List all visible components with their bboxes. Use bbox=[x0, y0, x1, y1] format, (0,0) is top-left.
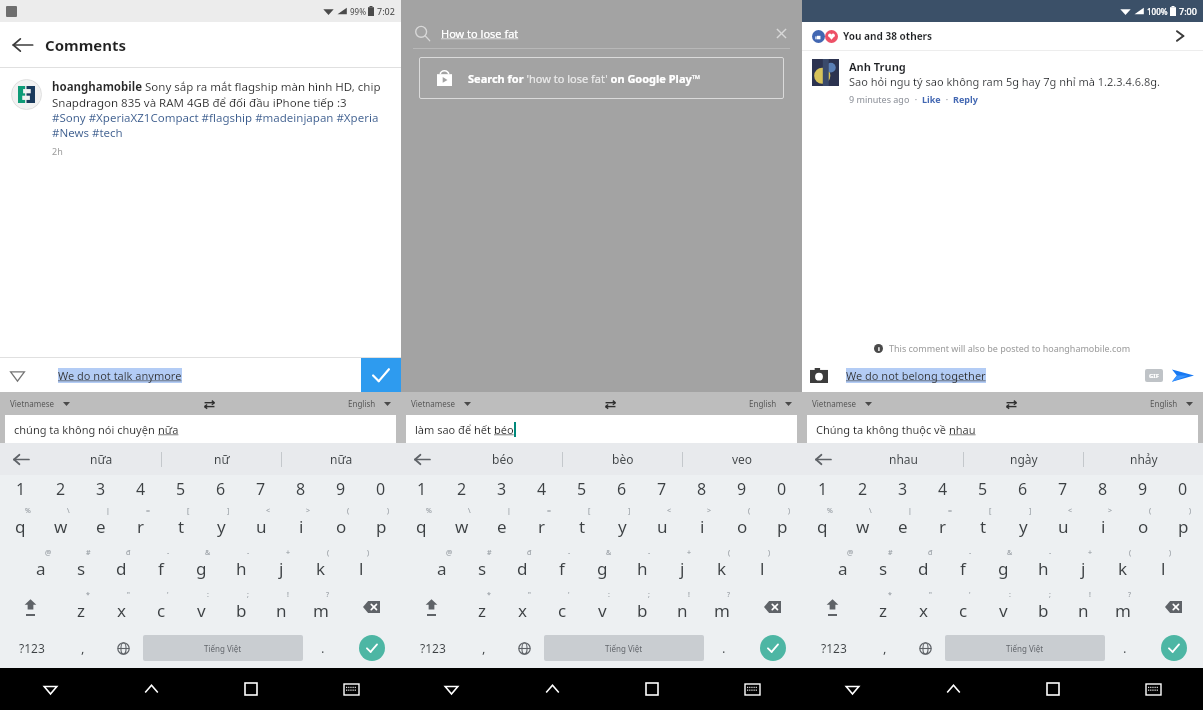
button[interactable]: ( bbox=[702, 544, 742, 586]
button[interactable]: > bbox=[281, 502, 321, 544]
button[interactable]: ; bbox=[622, 586, 662, 628]
button[interactable]: - bbox=[141, 544, 181, 586]
button[interactable]: 4 bbox=[923, 475, 963, 502]
button[interactable]: Vietnamese bbox=[812, 398, 872, 409]
button[interactable]: ; bbox=[221, 586, 261, 628]
button[interactable]: Swap languages bbox=[198, 393, 220, 415]
button[interactable]: Recents bbox=[201, 668, 301, 710]
button[interactable]: Search bbox=[411, 22, 433, 44]
button[interactable]: 3 bbox=[81, 475, 121, 502]
button[interactable]: ) bbox=[1163, 502, 1203, 544]
button[interactable]: ?123 bbox=[802, 628, 865, 668]
button[interactable]: 1 bbox=[401, 475, 442, 502]
button[interactable]: & bbox=[582, 544, 622, 586]
button[interactable]: \ bbox=[41, 502, 81, 544]
button[interactable]: @ bbox=[21, 544, 61, 586]
button[interactable]: Send bbox=[1163, 359, 1203, 392]
button[interactable]: Change language bbox=[103, 628, 143, 668]
button[interactable]: Tiếng Việt bbox=[945, 635, 1105, 661]
button[interactable]: Delete bbox=[1143, 586, 1203, 628]
button[interactable]: - bbox=[542, 544, 582, 586]
button[interactable]: 6 bbox=[1003, 475, 1043, 502]
button[interactable]: Vietnamese bbox=[10, 398, 70, 409]
button[interactable]: & bbox=[181, 544, 221, 586]
button[interactable]: & bbox=[983, 544, 1023, 586]
button[interactable]: @ bbox=[422, 544, 462, 586]
button[interactable]: 6 bbox=[201, 475, 241, 502]
button[interactable]: 4 bbox=[121, 475, 161, 502]
button[interactable]: \ bbox=[843, 502, 883, 544]
button[interactable]: 4 bbox=[522, 475, 562, 502]
button[interactable]: Home bbox=[903, 668, 1003, 710]
button[interactable]: 5 bbox=[161, 475, 201, 502]
button[interactable]: ! bbox=[261, 586, 301, 628]
button[interactable]: ' bbox=[943, 586, 983, 628]
button[interactable]: Send direct bbox=[0, 358, 34, 392]
button[interactable]: nữ bbox=[162, 443, 281, 475]
button[interactable]: veo bbox=[683, 443, 802, 475]
button[interactable]: béo bbox=[443, 443, 562, 475]
button[interactable]: Back bbox=[0, 668, 101, 710]
button[interactable]: : bbox=[181, 586, 221, 628]
button[interactable]: Chúng ta không thuộc về bbox=[816, 415, 1189, 443]
button[interactable]: nhau bbox=[844, 443, 963, 475]
button[interactable]: ( bbox=[1103, 544, 1143, 586]
button[interactable]: đ bbox=[502, 544, 542, 586]
button[interactable]: Search for 'how to lose fat' on Google P… bbox=[419, 57, 784, 99]
button[interactable]: , bbox=[865, 628, 905, 668]
button[interactable]: chúng ta không nói chuyện bbox=[14, 415, 387, 443]
button[interactable]: ( bbox=[1123, 502, 1163, 544]
button[interactable]: 2 bbox=[442, 475, 482, 502]
button[interactable]: ! bbox=[662, 586, 702, 628]
button[interactable]: English bbox=[749, 398, 792, 409]
button[interactable]: ? bbox=[702, 586, 742, 628]
button[interactable]: Clear bbox=[770, 22, 792, 44]
button[interactable]: % bbox=[0, 502, 41, 544]
button[interactable]: : bbox=[983, 586, 1023, 628]
button[interactable]: Back bbox=[0, 22, 45, 67]
button[interactable]: Enter bbox=[1145, 628, 1203, 668]
button[interactable]: 7 bbox=[241, 475, 281, 502]
button[interactable]: Delete bbox=[341, 586, 401, 628]
button[interactable]: 9 bbox=[1123, 475, 1163, 502]
button[interactable]: 3 bbox=[482, 475, 522, 502]
button[interactable]: * bbox=[462, 586, 502, 628]
button[interactable]: Previous suggestions bbox=[401, 443, 443, 475]
button[interactable]: ngày bbox=[964, 443, 1083, 475]
button[interactable]: Confirm bbox=[361, 358, 401, 392]
button[interactable]: 8 bbox=[682, 475, 722, 502]
button[interactable]: > bbox=[682, 502, 722, 544]
button[interactable]: ( bbox=[722, 502, 762, 544]
button[interactable]: Previous suggestions bbox=[802, 443, 844, 475]
button[interactable]: Back bbox=[401, 668, 502, 710]
button[interactable]: ? bbox=[301, 586, 341, 628]
button[interactable]: Home bbox=[101, 668, 201, 710]
button[interactable]: 5 bbox=[562, 475, 602, 502]
button[interactable]: Enter bbox=[744, 628, 802, 668]
button[interactable]: See all reactions bbox=[1167, 23, 1193, 49]
button[interactable]: 2 bbox=[843, 475, 883, 502]
button[interactable]: ] bbox=[201, 502, 241, 544]
button[interactable]: 8 bbox=[1083, 475, 1123, 502]
button[interactable]: + bbox=[261, 544, 301, 586]
button[interactable]: Home bbox=[502, 668, 602, 710]
button[interactable]: - bbox=[622, 544, 662, 586]
button[interactable]: 1 bbox=[802, 475, 843, 502]
button[interactable]: * bbox=[61, 586, 101, 628]
button[interactable]: Previous suggestions bbox=[0, 443, 42, 475]
button[interactable]: Hide keyboard bbox=[1103, 668, 1203, 710]
button[interactable]: ? bbox=[1103, 586, 1143, 628]
button[interactable]: Back bbox=[802, 668, 903, 710]
button[interactable]: , bbox=[464, 628, 504, 668]
button[interactable]: 2 bbox=[41, 475, 81, 502]
button[interactable]: bèo bbox=[563, 443, 682, 475]
button[interactable]: Enter bbox=[343, 628, 401, 668]
button[interactable]: Shift bbox=[401, 586, 462, 628]
button[interactable]: ! bbox=[1063, 586, 1103, 628]
button[interactable]: = bbox=[121, 502, 161, 544]
button[interactable]: \ bbox=[442, 502, 482, 544]
button[interactable]: Like bbox=[922, 93, 941, 105]
button[interactable]: ] bbox=[1003, 502, 1043, 544]
button[interactable]: Change language bbox=[905, 628, 945, 668]
button[interactable]: Hide keyboard bbox=[702, 668, 802, 710]
